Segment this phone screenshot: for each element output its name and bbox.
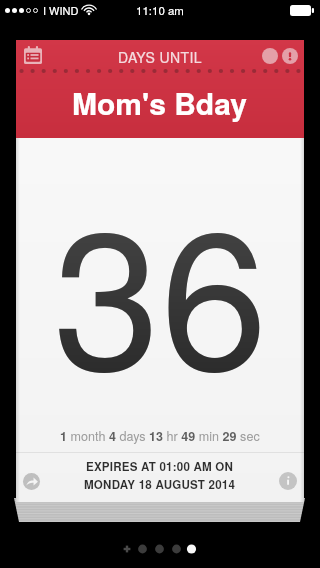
staticText: Mom's Bday xyxy=(72,81,248,124)
staticText: DAYS UNTIL xyxy=(118,47,202,67)
button[interactable]: Pages xyxy=(118,538,202,560)
staticText: I WIND xyxy=(43,2,79,18)
button[interactable]: Share xyxy=(19,469,43,493)
staticText: MONDAY 18 AUGUST 2014 xyxy=(84,476,236,493)
staticText: EXPIRES AT 01:00 AM ON xyxy=(86,458,234,475)
button[interactable]: Edit xyxy=(262,48,278,64)
button[interactable]: Alert xyxy=(282,48,298,64)
staticText: 36 xyxy=(53,148,268,424)
staticText: 11:10 am xyxy=(136,2,184,18)
button[interactable]: Info xyxy=(276,469,300,493)
button[interactable]: Calendar xyxy=(21,43,45,67)
staticText: 1 month 4 days 13 hr 49 min 29 sec xyxy=(60,427,260,445)
